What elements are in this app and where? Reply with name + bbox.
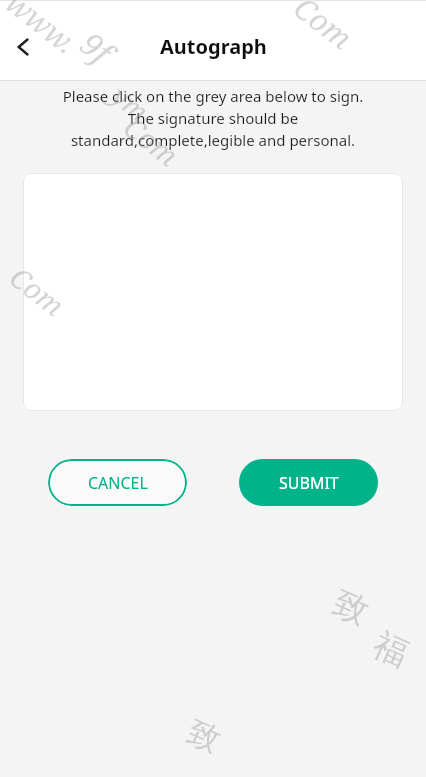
staticText: Please click on the grey area below to s… <box>20 86 406 151</box>
staticText: 致 <box>327 581 375 634</box>
staticText: CANCEL <box>88 472 148 494</box>
staticText: SUBMIT <box>279 472 339 494</box>
staticText: Com <box>286 0 361 58</box>
staticText: ym <box>105 78 157 129</box>
staticText: Autograph <box>160 33 267 60</box>
staticText: Com <box>117 108 186 174</box>
staticText: 致 <box>181 711 227 761</box>
staticText: 9f <box>71 22 121 74</box>
staticText: 福 <box>367 623 415 676</box>
button[interactable]: CANCEL <box>48 459 187 506</box>
button[interactable]: Back <box>0 23 48 71</box>
staticText: www. <box>0 0 86 63</box>
staticText: Com <box>3 258 72 324</box>
button[interactable]: SUBMIT <box>239 459 378 506</box>
button[interactable]: Signature area <box>23 173 403 411</box>
